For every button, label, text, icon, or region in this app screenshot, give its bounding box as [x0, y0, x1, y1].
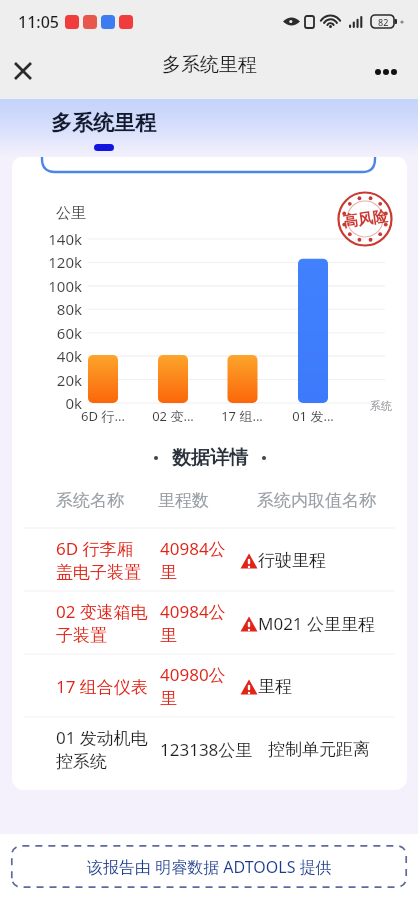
button[interactable]: More options	[374, 48, 414, 88]
staticText: 120k	[12, 252, 82, 272]
staticText: 6D 行...	[63, 407, 143, 425]
staticText: 100k	[12, 276, 82, 296]
staticText: 里程数	[158, 490, 209, 511]
staticText: 多系统里程	[51, 110, 156, 136]
staticText: M021 公里里程	[258, 612, 376, 635]
staticText: 80k	[12, 299, 82, 319]
staticText: 17 组合仪表	[56, 675, 148, 698]
button[interactable]: 多系统里程	[51, 110, 156, 151]
staticText: 6D 行李厢盖电子装置	[56, 537, 148, 583]
staticText: 11:05	[18, 11, 59, 33]
button[interactable]: Close	[3, 51, 43, 91]
staticText: 40980公里	[160, 663, 232, 709]
staticText: 里程	[258, 676, 292, 697]
button[interactable]: 01 发动机电控系统	[12, 718, 407, 780]
staticText: 02 变...	[133, 407, 213, 425]
staticText: 40984公里	[160, 600, 232, 646]
staticText: 多系统里程	[162, 53, 257, 77]
staticText: 02 变速箱电子装置	[56, 600, 148, 646]
staticText: 01 发...	[273, 407, 353, 425]
staticText: 40k	[12, 346, 82, 366]
staticText: 控制单元距离	[268, 739, 370, 760]
staticText: 0k	[12, 393, 82, 413]
staticText: 系统内取值名称	[257, 490, 376, 511]
staticText: 高风险	[342, 207, 389, 232]
staticText: 公里	[56, 204, 86, 223]
staticText: 行驶里程	[258, 550, 326, 571]
button[interactable]: 该报告由 明睿数据 ADTOOLS 提供	[11, 845, 407, 888]
staticText: 系统	[370, 399, 392, 413]
staticText: 20k	[12, 370, 82, 390]
staticText: 17 组...	[202, 407, 282, 425]
staticText: 该报告由 明睿数据 ADTOOLS 提供	[87, 856, 332, 878]
staticText: 40984公里	[160, 537, 232, 583]
button[interactable]: 02 变速箱电子装置	[12, 592, 407, 654]
button[interactable]: 6D 行李厢盖电子装置	[12, 529, 407, 591]
staticText: 01 发动机电控系统	[56, 726, 148, 772]
staticText: 60k	[12, 323, 82, 343]
staticText: 数据详情	[172, 446, 248, 470]
staticText: 140k	[12, 229, 82, 249]
staticText: 82	[378, 16, 389, 28]
button[interactable]: 17 组合仪表	[12, 655, 407, 717]
staticText: 系统名称	[56, 490, 124, 511]
staticText: 123138公里	[160, 738, 262, 761]
